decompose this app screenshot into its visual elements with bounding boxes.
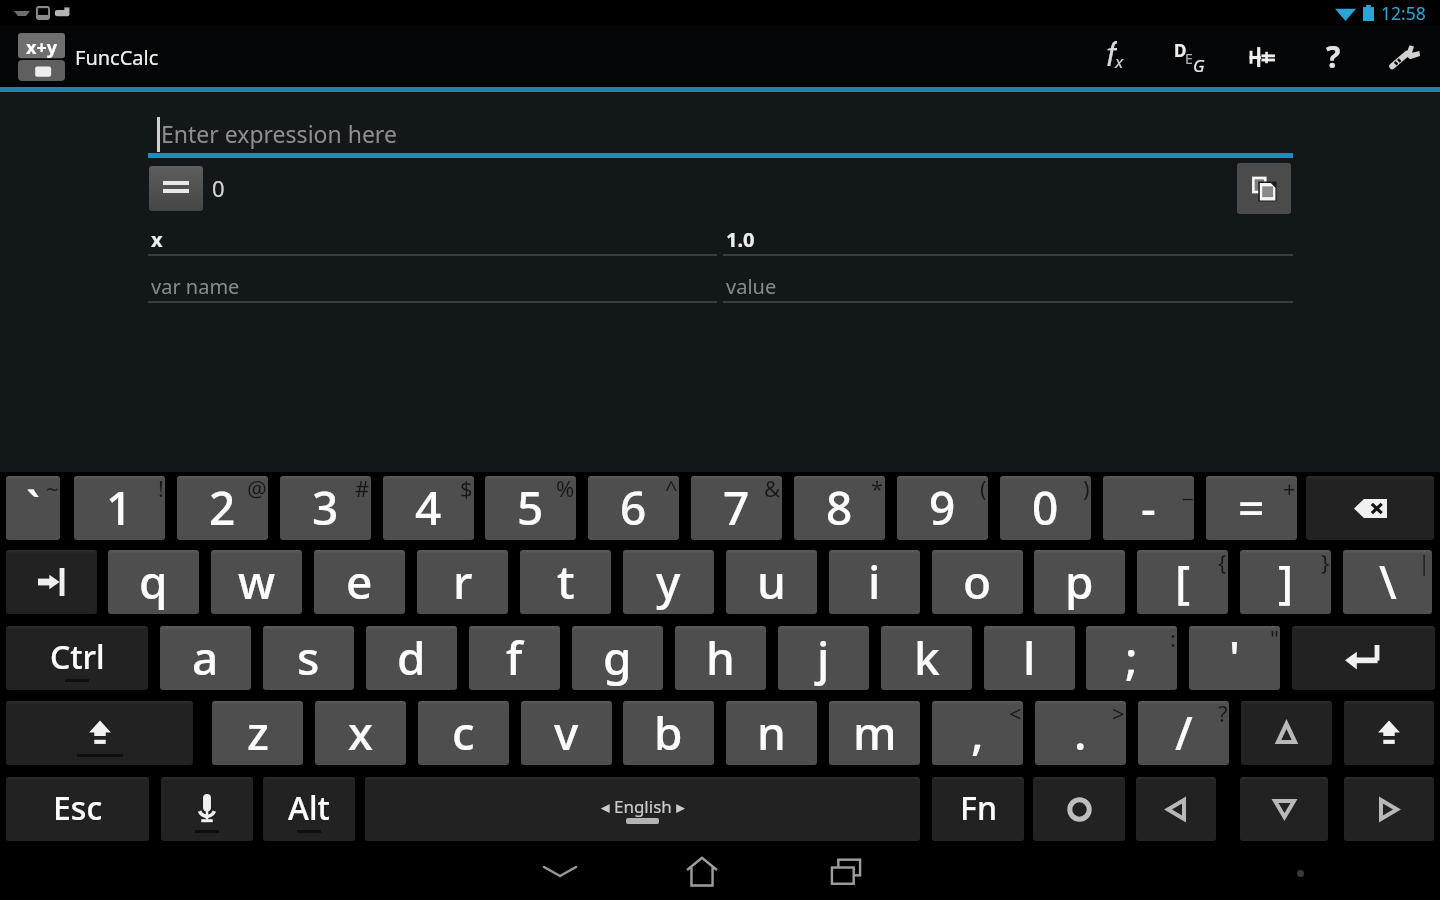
button[interactable]: n	[726, 701, 817, 765]
button[interactable]: j	[778, 626, 869, 690]
button[interactable]: 4	[383, 476, 474, 540]
button[interactable]: g	[572, 626, 663, 690]
button[interactable]: ;	[1086, 626, 1177, 690]
button[interactable]: Hide keyboard	[500, 843, 620, 900]
button[interactable]: Settings	[1369, 26, 1440, 87]
staticText: -	[1141, 476, 1156, 539]
button[interactable]: p	[1034, 550, 1125, 614]
button[interactable]: [	[1137, 550, 1228, 614]
staticText: v	[554, 701, 579, 764]
button[interactable]: e	[314, 550, 405, 614]
button[interactable]: 5	[485, 476, 576, 540]
button[interactable]: t	[520, 550, 611, 614]
button[interactable]: Shift	[1344, 701, 1434, 765]
button[interactable]: 3	[280, 476, 371, 540]
button[interactable]: f	[469, 626, 560, 690]
staticText: i	[868, 550, 881, 613]
button[interactable]: Symbols	[1033, 777, 1125, 841]
button[interactable]: 8	[794, 476, 885, 540]
button[interactable]: Help	[1298, 26, 1369, 87]
button[interactable]: 9	[897, 476, 988, 540]
staticText: E	[1185, 49, 1193, 68]
button[interactable]: z	[212, 701, 303, 765]
staticText: [	[1175, 550, 1191, 613]
button[interactable]: `	[6, 476, 60, 540]
button[interactable]: Voice input	[161, 777, 253, 841]
staticText: $	[460, 476, 473, 503]
button[interactable]: Recent apps	[786, 843, 906, 900]
button[interactable]: Home	[642, 843, 762, 900]
staticText: <	[1009, 701, 1022, 728]
button[interactable]: y	[623, 550, 714, 614]
button[interactable]: Cursor right	[1344, 777, 1434, 841]
button[interactable]: Esc	[6, 777, 149, 841]
staticText: (	[980, 476, 987, 503]
button[interactable]: m	[829, 701, 920, 765]
button[interactable]: q	[108, 550, 199, 614]
button[interactable]: b	[623, 701, 714, 765]
button[interactable]: d	[366, 626, 457, 690]
button[interactable]: w	[211, 550, 302, 614]
button[interactable]: 1	[74, 476, 165, 540]
staticText: *	[871, 476, 884, 503]
staticText: x	[1115, 50, 1124, 73]
staticText: 0	[1032, 476, 1059, 539]
button[interactable]: 1.0	[723, 228, 1293, 266]
button[interactable]: o	[932, 550, 1023, 614]
button[interactable]: value	[723, 275, 1293, 313]
button[interactable]: Evaluate	[149, 166, 203, 211]
button[interactable]: -	[1103, 476, 1194, 540]
button[interactable]: h	[675, 626, 766, 690]
button[interactable]: Angle unit	[1156, 26, 1227, 87]
button[interactable]: Shift	[6, 701, 193, 765]
button[interactable]: Copy result	[1237, 163, 1291, 214]
button[interactable]: .	[1035, 701, 1126, 765]
button[interactable]: k	[881, 626, 972, 690]
staticText: var name	[151, 273, 240, 300]
button[interactable]: var name	[148, 275, 717, 313]
button[interactable]: 0	[1000, 476, 1091, 540]
button[interactable]: Space	[365, 777, 920, 841]
button[interactable]: s	[263, 626, 354, 690]
button[interactable]: Cursor down	[1240, 777, 1328, 841]
staticText: b	[654, 701, 683, 764]
button[interactable]: v	[521, 701, 612, 765]
staticText: ?	[1218, 701, 1228, 728]
button[interactable]: x	[315, 701, 406, 765]
staticText: w	[238, 550, 276, 613]
button[interactable]: x	[148, 228, 717, 266]
button[interactable]: '	[1189, 626, 1280, 690]
button[interactable]: Plot graph	[1227, 26, 1298, 87]
button[interactable]: Ctrl	[6, 626, 148, 690]
staticText: .	[1074, 701, 1087, 764]
button[interactable]: Enter	[1292, 626, 1435, 690]
button[interactable]: 2	[177, 476, 268, 540]
button[interactable]: Alt	[263, 777, 355, 841]
button[interactable]: Fn	[932, 777, 1024, 841]
staticText: "	[1270, 626, 1279, 653]
button[interactable]: l	[984, 626, 1075, 690]
button[interactable]: ]	[1240, 550, 1331, 614]
button[interactable]: 6	[588, 476, 679, 540]
staticText: 1	[106, 476, 133, 539]
button[interactable]: r	[417, 550, 508, 614]
button[interactable]: a	[160, 626, 251, 690]
button[interactable]: c	[418, 701, 509, 765]
button[interactable]: 7	[691, 476, 782, 540]
staticText: z	[247, 701, 269, 764]
staticText: k	[914, 626, 940, 689]
button[interactable]: Tab	[6, 550, 97, 614]
button[interactable]: i	[829, 550, 920, 614]
staticText: |	[1418, 550, 1431, 577]
button[interactable]: \	[1343, 550, 1432, 614]
button[interactable]: Backspace	[1306, 476, 1434, 540]
button[interactable]: Cursor up	[1241, 701, 1332, 765]
button[interactable]: =	[1206, 476, 1297, 540]
staticText: g	[603, 626, 632, 689]
button[interactable]: Functions	[1085, 26, 1156, 87]
button[interactable]: ,	[932, 701, 1023, 765]
staticText: {	[1218, 550, 1227, 577]
button[interactable]: Cursor left	[1136, 777, 1216, 841]
button[interactable]: /	[1138, 701, 1229, 765]
button[interactable]: u	[726, 550, 817, 614]
